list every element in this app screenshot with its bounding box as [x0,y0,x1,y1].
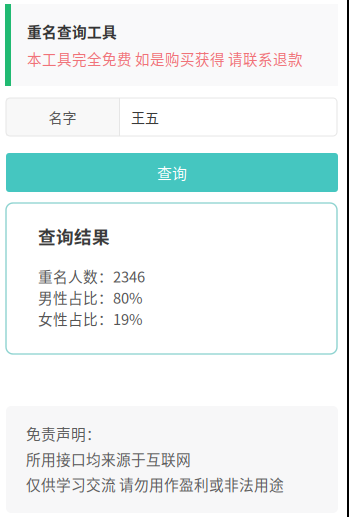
staticText: 王五 [131,107,159,127]
staticText: 查询 [157,162,187,183]
staticText: 重名人数：2346 [38,265,145,287]
staticText: 男性占比：80% [38,287,143,308]
staticText: 名字 [48,107,76,127]
button[interactable]: 查询 [6,153,338,192]
staticText: 本工具完全免费 如是购买获得 请联系退款 [27,48,303,69]
staticText: 重名查询工具 [27,21,117,42]
staticText: 女性占比：19% [38,308,143,329]
staticText: 仅供学习交流 请勿用作盈利或非法用途 [26,473,284,495]
button[interactable]: 名字 [6,98,337,136]
staticText: 查询结果 [38,223,110,248]
staticText: 所用接口均来源于互联网 [26,448,191,469]
staticText: 免责声明： [26,423,101,444]
